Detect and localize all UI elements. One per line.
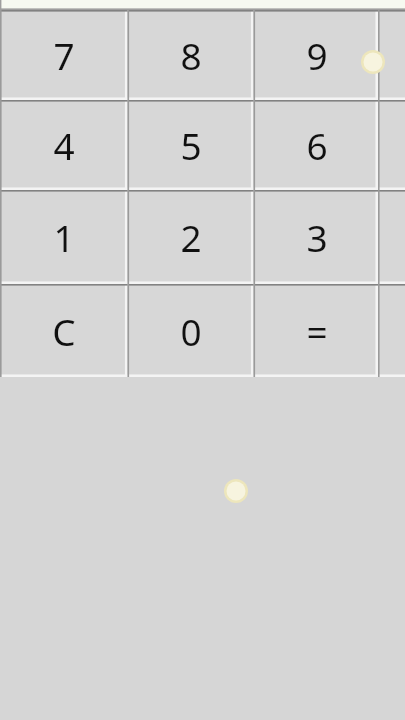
staticText: 1 <box>53 212 75 262</box>
button[interactable]: 6 <box>254 100 379 190</box>
button[interactable]: 5 <box>128 100 254 190</box>
button[interactable]: 0 <box>128 284 254 377</box>
button[interactable]: Operator key <box>378 284 405 377</box>
staticText: 5 <box>180 120 202 170</box>
staticText: 8 <box>180 30 202 80</box>
button[interactable]: 1 <box>0 190 128 284</box>
staticText: 0 <box>180 306 202 356</box>
button[interactable]: Operator key <box>378 10 405 100</box>
staticText: 4 <box>53 120 75 170</box>
button[interactable]: 7 <box>0 10 128 100</box>
staticText: C <box>52 306 76 356</box>
staticText: 7 <box>53 30 75 80</box>
button[interactable]: C <box>0 284 128 377</box>
button[interactable]: Operator key <box>378 190 405 284</box>
staticText: = <box>306 306 328 356</box>
button[interactable]: = <box>254 284 379 377</box>
staticText: 6 <box>306 120 328 170</box>
button[interactable]: 8 <box>128 10 254 100</box>
button[interactable]: 3 <box>254 190 379 284</box>
button[interactable]: 9 <box>254 10 379 100</box>
button[interactable]: 4 <box>0 100 128 190</box>
button[interactable]: 2 <box>128 190 254 284</box>
staticText: 9 <box>306 30 328 80</box>
button[interactable]: Operator key <box>378 100 405 190</box>
staticText: 3 <box>306 212 328 262</box>
staticText: 2 <box>180 212 202 262</box>
